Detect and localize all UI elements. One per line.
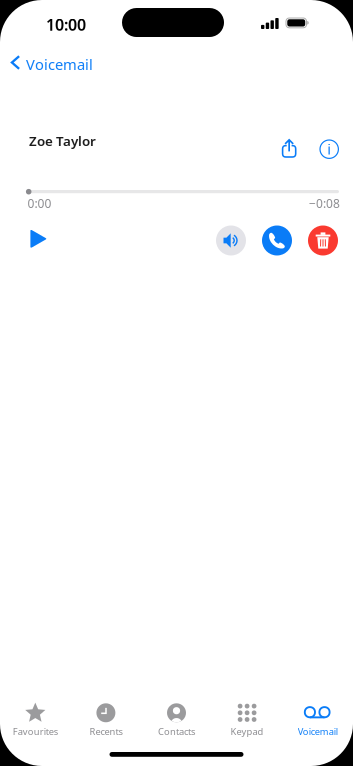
button[interactable]: Speaker	[216, 225, 246, 255]
staticText: −0:08	[309, 195, 340, 211]
button[interactable]: Details	[312, 132, 346, 166]
staticText: i	[327, 139, 331, 159]
staticText: Voicemail	[298, 725, 338, 738]
button[interactable]: Favourites	[0, 694, 71, 738]
button[interactable]: Voicemail	[0, 46, 103, 79]
staticText: 10:00	[46, 14, 86, 35]
staticText: Zoe Taylor	[29, 132, 96, 150]
button[interactable]: Voicemail	[282, 694, 353, 738]
button[interactable]: Share	[273, 132, 305, 166]
staticText: Recents	[89, 725, 122, 738]
button[interactable]: Recents	[71, 694, 141, 738]
button[interactable]: Play	[21, 221, 55, 256]
staticText: Favourites	[13, 725, 58, 738]
button[interactable]: Contacts	[141, 694, 212, 738]
staticText: Voicemail	[26, 55, 93, 74]
staticText: Contacts	[158, 725, 195, 738]
staticText: 0:00	[27, 195, 51, 211]
staticText: Keypad	[231, 725, 264, 738]
button[interactable]: Keypad	[212, 694, 282, 738]
button[interactable]: Call back	[262, 225, 292, 255]
button[interactable]: Delete	[308, 225, 338, 255]
